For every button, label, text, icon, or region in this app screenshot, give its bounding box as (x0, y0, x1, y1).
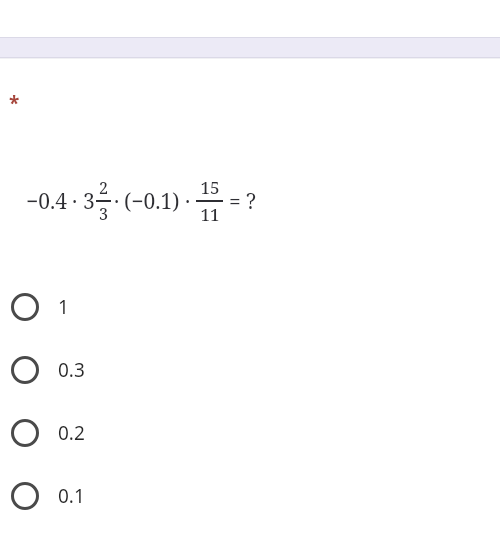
staticText: 0.1 (58, 483, 85, 509)
staticText: · (72, 187, 78, 216)
button[interactable]: 0.1 (0, 464, 500, 527)
staticText: ? (246, 187, 256, 216)
staticText: = (229, 187, 241, 216)
staticText: −0.4 (26, 187, 67, 216)
staticText: 1 (58, 294, 69, 320)
staticText: 15 (200, 176, 220, 199)
staticText: (−0.1) (124, 187, 180, 216)
staticText: · (185, 187, 191, 216)
button[interactable]: 1 (0, 275, 500, 338)
staticText: 2 (99, 177, 108, 199)
staticText: * (9, 90, 20, 116)
staticText: · (114, 187, 120, 216)
button[interactable]: 0.2 (0, 401, 500, 464)
staticText: 0.2 (58, 420, 85, 446)
staticText: 3 (99, 203, 108, 225)
button[interactable]: 0.3 (0, 338, 500, 401)
staticText: 3 (83, 187, 95, 216)
staticText: 0.3 (58, 357, 85, 383)
staticText: 11 (200, 203, 220, 226)
